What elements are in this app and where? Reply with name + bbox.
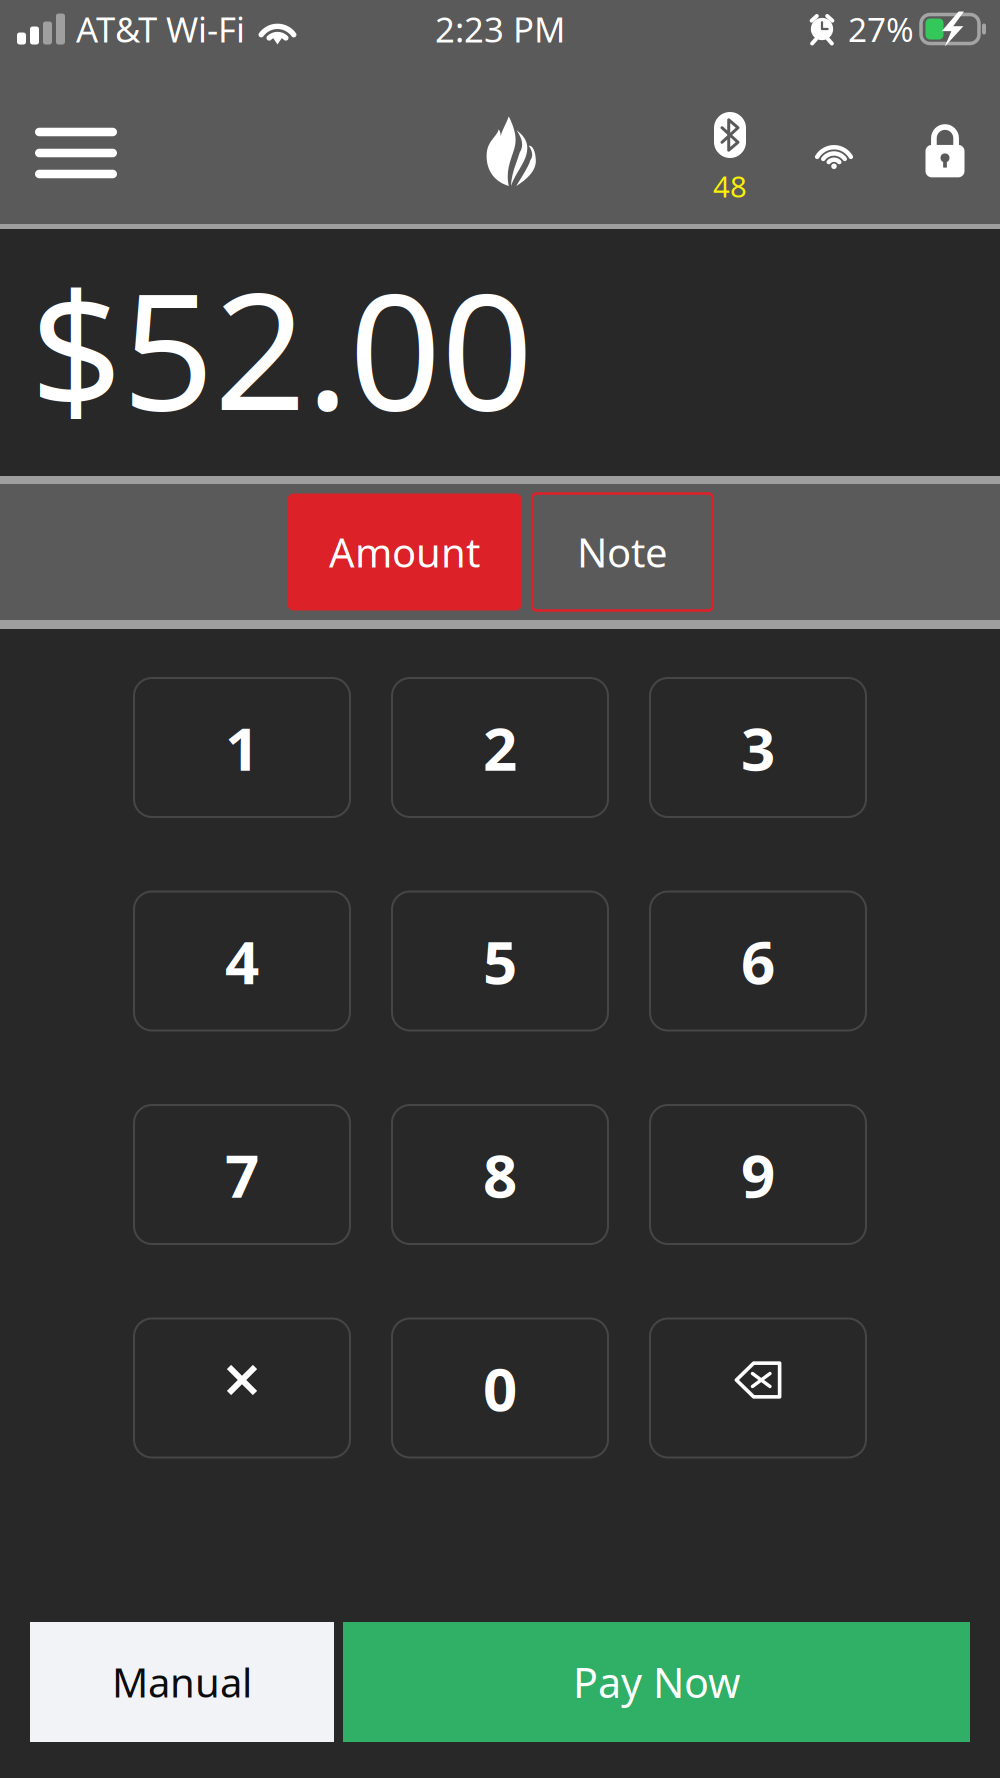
button[interactable]: 0 [392, 1318, 608, 1457]
button[interactable]: 6 [650, 891, 866, 1030]
button[interactable]: Bluetooth, 48 connected [682, 58, 778, 224]
button[interactable] [134, 1318, 350, 1457]
button[interactable]: 9 [650, 1105, 866, 1244]
staticText: 5 [483, 921, 517, 1001]
staticText: 2:23 PM [435, 6, 565, 52]
staticText: Amount [329, 525, 480, 578]
button[interactable]: Wi-Fi [778, 58, 890, 224]
button[interactable]: Note [532, 493, 712, 610]
staticText: 4 [225, 921, 259, 1001]
staticText: $52.00 [30, 240, 533, 455]
staticText: 3 [741, 708, 775, 787]
button[interactable]: Lock [890, 58, 1000, 224]
staticText: 0 [483, 1348, 517, 1428]
staticText: 6 [741, 921, 775, 1001]
button[interactable]: 4 [134, 891, 350, 1030]
staticText: 9 [741, 1135, 775, 1214]
button[interactable]: Manual [30, 1622, 334, 1742]
staticText: 48 [713, 166, 747, 205]
button[interactable]: Menu [0, 70, 152, 236]
button[interactable] [650, 1318, 866, 1457]
staticText: 2 [483, 708, 517, 787]
staticText: 8 [483, 1135, 517, 1214]
staticText: AT&T Wi-Fi [76, 6, 245, 52]
staticText: 7 [225, 1135, 259, 1214]
button[interactable]: Amount [287, 493, 521, 610]
button[interactable]: Pay Now [343, 1622, 970, 1742]
staticText: Note [577, 525, 668, 578]
button[interactable]: 2 [392, 678, 608, 817]
button[interactable]: 1 [134, 678, 350, 817]
button[interactable]: 7 [134, 1105, 350, 1244]
button[interactable]: 8 [392, 1105, 608, 1244]
button[interactable]: 3 [650, 678, 866, 817]
staticText: 1 [225, 708, 259, 787]
staticText: Manual [112, 1655, 252, 1708]
button[interactable]: 5 [392, 891, 608, 1030]
staticText: 27% [848, 7, 914, 51]
staticText: Pay Now [573, 1655, 740, 1709]
